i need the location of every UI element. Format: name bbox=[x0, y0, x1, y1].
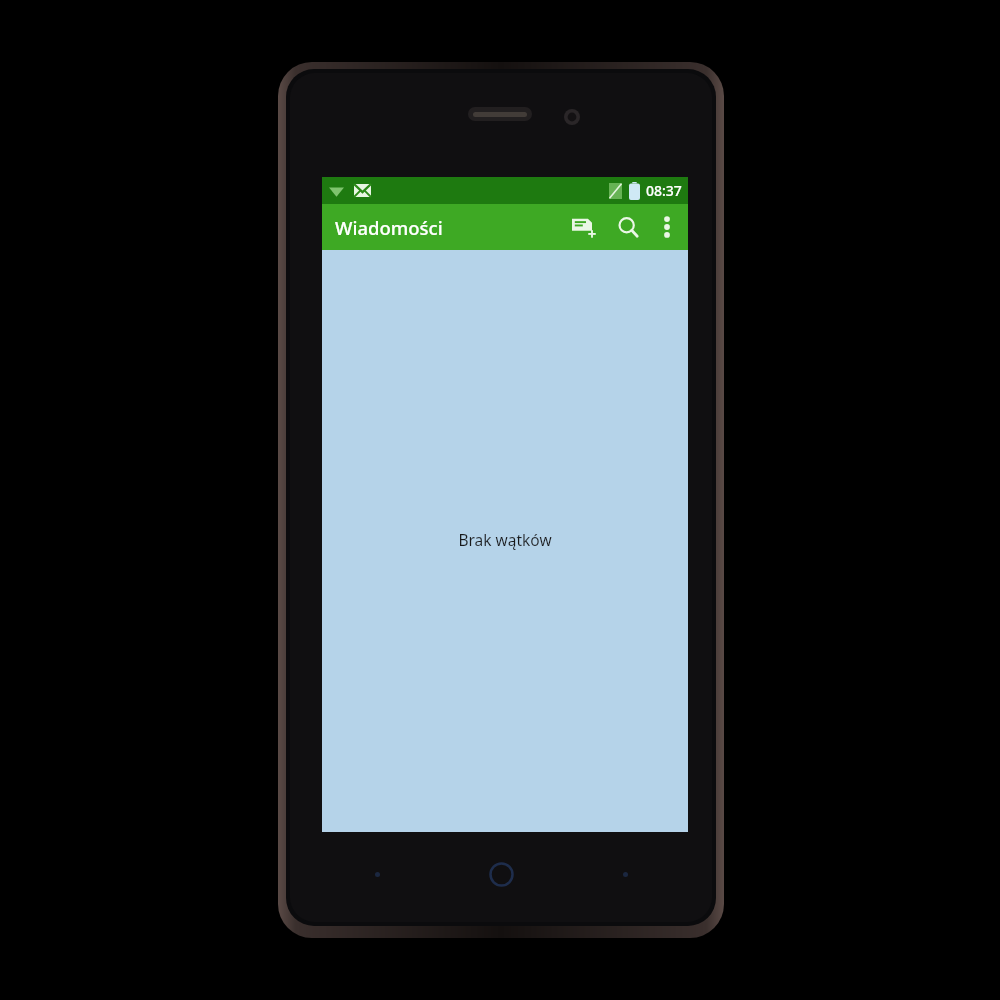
button[interactable]: Ekran główny bbox=[479, 852, 523, 896]
button[interactable]: Ostatnie aplikacje bbox=[608, 857, 642, 891]
button[interactable]: Więcej opcji bbox=[650, 205, 684, 249]
staticText: Brak wątków bbox=[458, 529, 552, 550]
button[interactable]: Szukaj bbox=[606, 205, 650, 249]
button[interactable]: Wstecz bbox=[360, 857, 394, 891]
button[interactable]: Nowa wiadomość bbox=[562, 205, 606, 249]
staticText: 08:37 bbox=[646, 181, 682, 200]
staticText: Wiadomości bbox=[335, 215, 443, 240]
